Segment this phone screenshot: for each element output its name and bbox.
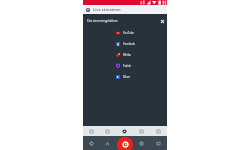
staticText: Weibo	[123, 53, 131, 57]
button[interactable]: Twitch	[83, 60, 167, 71]
button[interactable]: Weibo	[83, 49, 167, 60]
button[interactable]: Tab 2	[99, 126, 116, 136]
staticText: Live streamen	[93, 7, 121, 13]
button[interactable]: Mixer	[83, 71, 167, 82]
button[interactable]: Facebook	[83, 38, 167, 49]
button[interactable]: Home	[99, 136, 116, 150]
staticText: Facebook	[123, 42, 136, 46]
button[interactable]: Open navigation menu	[86, 8, 90, 12]
staticText: YouTube	[123, 31, 134, 35]
staticText: Twitch	[123, 64, 132, 68]
button[interactable]: Tab 5	[150, 126, 167, 136]
staticText: Mixer	[123, 75, 131, 79]
button[interactable]: Start live stream	[117, 137, 133, 150]
button[interactable]: Recent apps	[150, 136, 167, 150]
button[interactable]: YouTube	[83, 27, 167, 38]
button[interactable]: Close	[159, 18, 166, 25]
button[interactable]: Back	[83, 136, 99, 150]
staticText: Kies streamingplatform	[87, 19, 118, 23]
button[interactable]: Tab 4	[133, 126, 150, 136]
button[interactable]: Tab 1	[83, 126, 99, 136]
button[interactable]: Tab 3	[116, 126, 133, 136]
button[interactable]: Camera	[133, 136, 150, 150]
